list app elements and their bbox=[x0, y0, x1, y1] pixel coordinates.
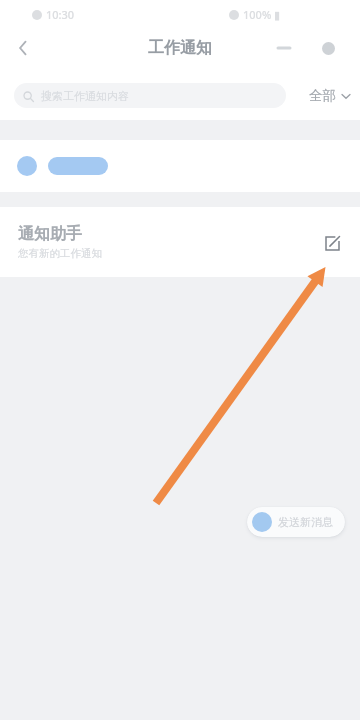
staticText: 全部 bbox=[309, 87, 336, 104]
staticText: 您有新的工作通知 bbox=[18, 247, 102, 260]
button[interactable]: Compose bbox=[317, 228, 347, 258]
button[interactable]: 发送新消息 bbox=[247, 507, 345, 537]
button[interactable]: 全部 bbox=[309, 83, 351, 108]
button[interactable]: Back bbox=[10, 35, 36, 61]
staticText: 发送新消息 bbox=[278, 515, 333, 529]
button[interactable]: Close bbox=[316, 36, 340, 60]
staticText: 工作通知 bbox=[148, 38, 212, 58]
staticText: 10:30 bbox=[46, 7, 75, 22]
staticText: 100% ▮ bbox=[243, 7, 281, 22]
button[interactable]: 搜索工作通知内容 bbox=[14, 83, 286, 108]
button[interactable] bbox=[0, 140, 360, 192]
staticText: 搜索工作通知内容 bbox=[41, 89, 129, 103]
button[interactable]: 通知助手 bbox=[0, 207, 360, 277]
staticText: 通知助手 bbox=[18, 224, 82, 244]
button[interactable]: Minimize bbox=[272, 36, 296, 60]
